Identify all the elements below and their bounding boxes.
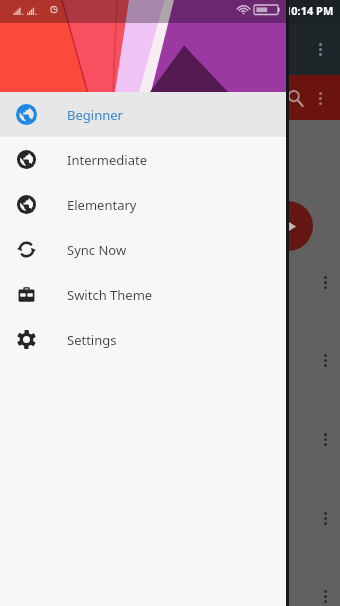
button[interactable]: More options [317, 268, 333, 296]
staticText: Sync Now [67, 241, 127, 259]
button[interactable]: More options [317, 425, 333, 453]
button[interactable]: Intermediate [0, 137, 287, 182]
button[interactable]: More options [317, 504, 333, 532]
staticText: Switch Theme [67, 286, 153, 304]
button[interactable]: Play [263, 201, 313, 251]
button[interactable]: More options [312, 29, 328, 69]
staticText: 10:14 PM [285, 3, 334, 18]
button[interactable]: Elementary [0, 182, 287, 227]
button[interactable]: Beginner [0, 92, 287, 137]
staticText: Settings [67, 331, 117, 349]
button[interactable]: Settings [0, 317, 287, 362]
button[interactable]: Search [283, 78, 307, 118]
staticText: Intermediate [67, 151, 147, 169]
button[interactable]: Sync Now [0, 227, 287, 272]
button[interactable]: Switch Theme [0, 272, 287, 317]
button[interactable]: More options [317, 582, 333, 606]
button[interactable]: More options [317, 346, 333, 374]
staticText: Beginner [67, 106, 123, 124]
button[interactable]: More options [312, 78, 328, 118]
staticText: Elementary [67, 196, 137, 214]
